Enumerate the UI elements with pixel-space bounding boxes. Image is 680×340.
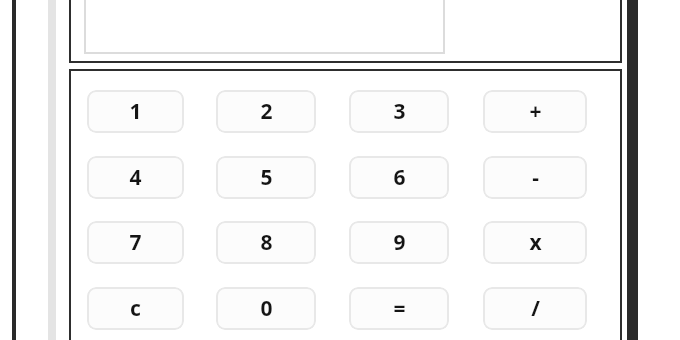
button[interactable]: 9 — [349, 221, 449, 264]
button[interactable]: + — [483, 90, 587, 133]
button[interactable]: x — [483, 221, 587, 264]
staticText: 8 — [260, 228, 273, 257]
staticText: 1 — [129, 97, 142, 126]
button[interactable]: 5 — [216, 156, 316, 199]
staticText: 7 — [129, 228, 142, 257]
staticText: c — [130, 294, 141, 323]
staticText: 0 — [260, 294, 273, 323]
button[interactable]: 3 — [349, 90, 449, 133]
staticText: 5 — [260, 163, 273, 192]
staticText: = — [393, 294, 406, 323]
staticText: + — [529, 97, 542, 126]
button[interactable]: 6 — [349, 156, 449, 199]
staticText: / — [531, 294, 540, 323]
staticText: 6 — [393, 163, 406, 192]
button[interactable]: 8 — [216, 221, 316, 264]
button[interactable]: 1 — [87, 90, 184, 133]
staticText: - — [532, 163, 539, 192]
staticText: x — [529, 228, 542, 257]
button[interactable]: 2 — [216, 90, 316, 133]
button[interactable] — [84, 0, 445, 54]
button[interactable]: 4 — [87, 156, 184, 199]
button[interactable]: - — [483, 156, 587, 199]
staticText: 3 — [393, 97, 406, 126]
button[interactable]: 0 — [216, 287, 316, 330]
button[interactable]: 7 — [87, 221, 184, 264]
button[interactable]: c — [87, 287, 184, 330]
button[interactable]: = — [349, 287, 449, 330]
staticText: 2 — [260, 97, 273, 126]
staticText: 9 — [393, 228, 406, 257]
staticText: 4 — [129, 163, 142, 192]
button[interactable]: / — [483, 287, 587, 330]
